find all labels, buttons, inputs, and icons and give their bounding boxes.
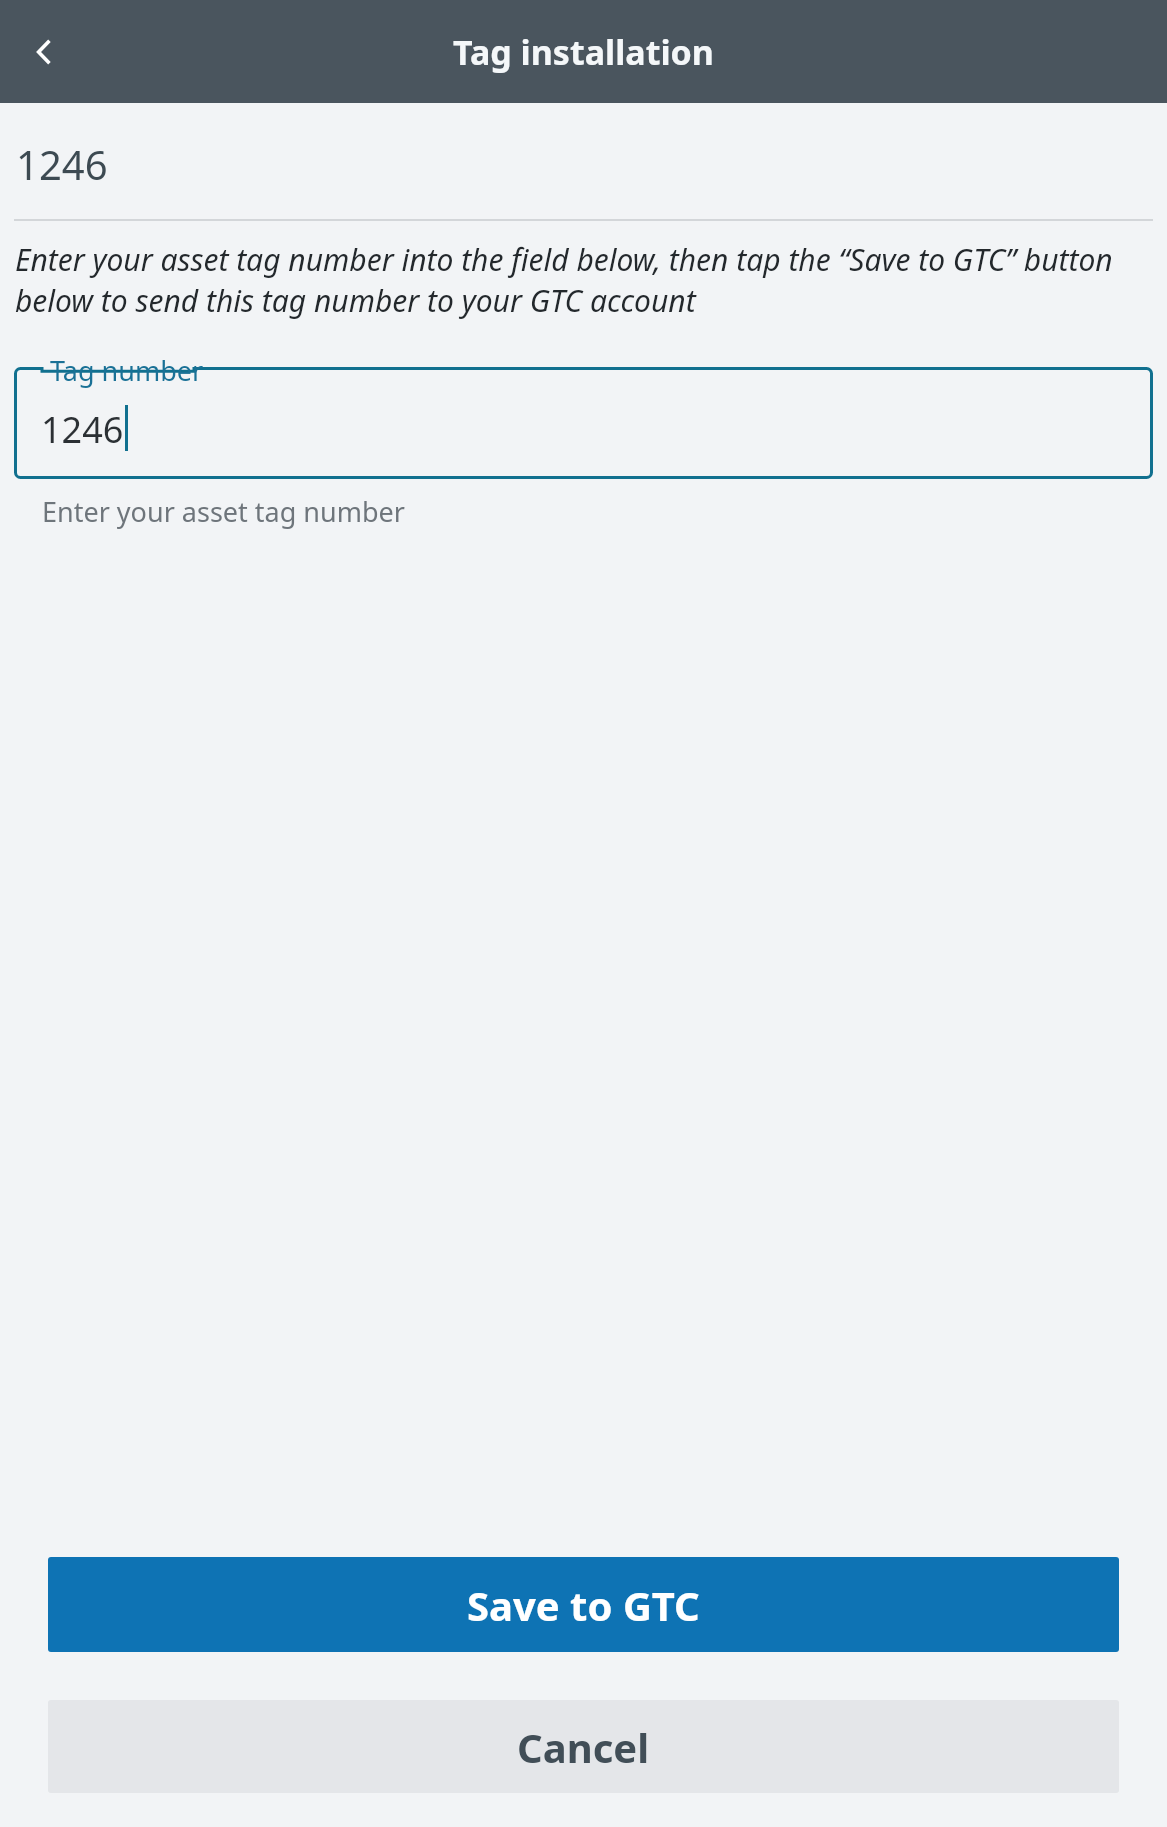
staticText: Save to GTC: [467, 1578, 700, 1632]
staticText: 1246: [16, 137, 108, 191]
staticText: Tag number: [50, 352, 204, 389]
button[interactable]: Cancel: [48, 1700, 1119, 1793]
button[interactable]: Save to GTC: [48, 1557, 1119, 1652]
button[interactable]: Back: [8, 16, 80, 88]
button[interactable]: Tag number: [14, 367, 1153, 479]
staticText: Enter your asset tag number: [42, 493, 405, 530]
staticText: 1246: [41, 405, 124, 454]
staticText: Cancel: [517, 1720, 650, 1774]
staticText: Enter your asset tag number into the fie…: [15, 239, 1152, 321]
staticText: Tag installation: [453, 29, 714, 75]
